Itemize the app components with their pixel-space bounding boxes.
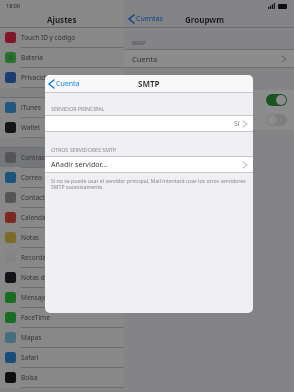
button[interactable]: Desactivado xyxy=(124,110,294,130)
staticText: iTunes xyxy=(21,103,41,112)
staticText: SERVIDOR PRINCIPAL xyxy=(51,105,105,112)
button[interactable]: Privacidad xyxy=(0,68,124,88)
staticText: Safari xyxy=(21,353,39,362)
button[interactable]: Safari xyxy=(0,348,124,368)
staticText: Mapas xyxy=(21,333,42,342)
staticText: Touch ID y código xyxy=(21,33,76,42)
staticText: OTROS SERVIDORES SMTP xyxy=(51,146,117,153)
staticText: Notas xyxy=(21,233,39,242)
button[interactable]: Touch ID y código xyxy=(0,28,124,48)
staticText: Sí xyxy=(234,119,240,129)
button[interactable]: Mapas xyxy=(0,328,124,348)
staticText: Correo xyxy=(21,173,42,182)
staticText: Si no se puede usar el servidor principa… xyxy=(51,177,247,191)
button[interactable]: Contactos xyxy=(0,188,124,208)
button[interactable]: Correo xyxy=(0,168,124,188)
other: Activado xyxy=(266,94,287,106)
button[interactable]: Recordatorios xyxy=(0,248,124,268)
button[interactable]: Notas xyxy=(0,228,124,248)
button[interactable]: Sí xyxy=(45,116,253,131)
staticText: Ajustes xyxy=(47,14,77,25)
button[interactable]: Mensajes xyxy=(0,288,124,308)
staticText: FaceTime xyxy=(21,313,50,322)
button[interactable]: Activado xyxy=(124,90,294,110)
other: Desactivado xyxy=(266,114,287,126)
staticText: 18:00 xyxy=(6,2,21,9)
button[interactable]: Cuenta xyxy=(124,50,294,67)
staticText: Notas de voz xyxy=(21,273,61,282)
button[interactable]: Cuenta xyxy=(49,79,80,89)
staticText: IMAP xyxy=(132,39,146,46)
staticText: Batería xyxy=(21,53,43,62)
staticText: Groupwm xyxy=(185,14,224,25)
staticText: Privacidad xyxy=(21,73,53,82)
staticText: Mensajes xyxy=(21,293,50,302)
staticText: Contactos xyxy=(21,193,52,202)
staticText: Añadir servidor… xyxy=(51,160,108,170)
staticText: Cuentas xyxy=(136,14,163,24)
button[interactable]: Notas de voz xyxy=(0,268,124,288)
staticText: Contraseñas xyxy=(21,153,60,162)
button[interactable]: Cuentas xyxy=(129,14,163,24)
button[interactable]: Contraseñas xyxy=(0,148,124,168)
staticText: Cuenta xyxy=(132,54,158,64)
button[interactable]: Wallet xyxy=(0,118,124,138)
button[interactable]: Calendario xyxy=(0,208,124,228)
button[interactable]: Bolsa xyxy=(0,368,124,388)
staticText: Wallet xyxy=(21,123,40,132)
button[interactable]: FaceTime xyxy=(0,308,124,328)
button[interactable]: Añadir servidor… xyxy=(45,157,253,172)
staticText: Recordatorios xyxy=(21,253,64,262)
staticText: Cuenta xyxy=(56,79,80,89)
staticText: SMTP xyxy=(138,78,160,89)
button[interactable]: Batería xyxy=(0,48,124,68)
staticText: Bolsa xyxy=(21,373,38,382)
button[interactable]: iTunes xyxy=(0,98,124,118)
staticText: Calendario xyxy=(21,213,55,222)
